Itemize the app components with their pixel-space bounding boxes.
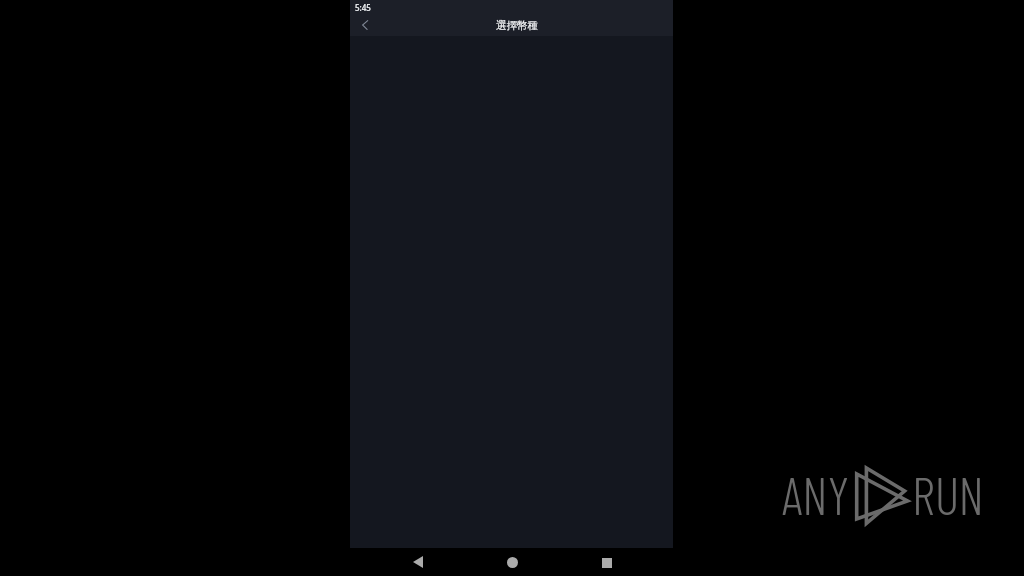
button[interactable]: Back bbox=[407, 551, 428, 572]
button[interactable]: Back bbox=[354, 14, 376, 36]
staticText: 5:45 bbox=[355, 2, 371, 13]
button[interactable]: Home bbox=[502, 552, 523, 573]
staticText: RUN bbox=[912, 463, 984, 525]
staticText: 選擇幣種 bbox=[496, 19, 538, 32]
staticText: ANY bbox=[782, 463, 850, 525]
button[interactable]: Recent apps bbox=[596, 552, 617, 573]
